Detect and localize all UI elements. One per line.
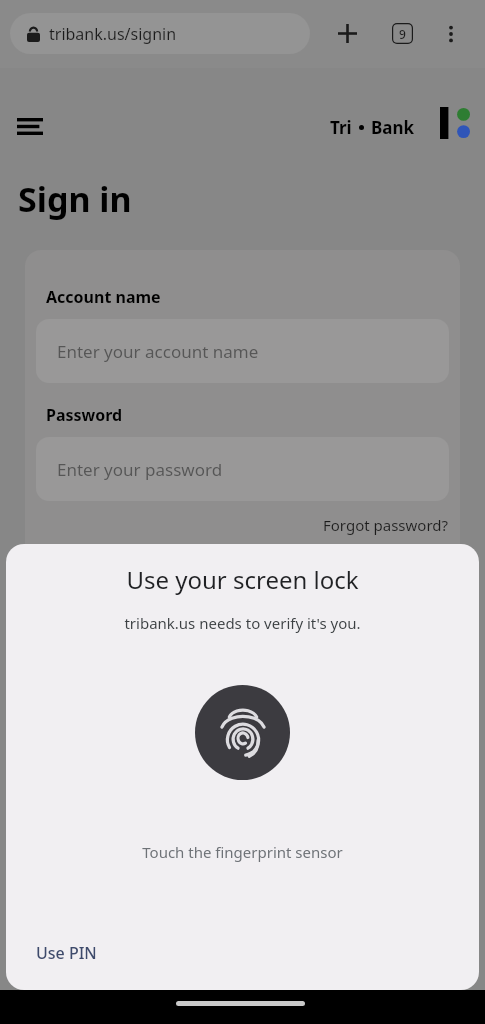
button[interactable]: More options (430, 13, 471, 54)
staticText: Use your screen lock (126, 563, 359, 596)
staticText: tribank.us/signin (49, 23, 177, 45)
button[interactable]: Enter your password (36, 437, 449, 501)
staticText: Enter your account name (57, 340, 259, 363)
button[interactable]: New tab (327, 13, 368, 54)
button[interactable]: Use PIN (22, 934, 111, 972)
button[interactable]: Forgot password? (323, 515, 449, 535)
button[interactable]: tribank.us/signin (10, 13, 310, 54)
button[interactable]: Menu (8, 104, 52, 148)
button[interactable]: Fingerprint sensor (195, 685, 290, 780)
staticText: Password (46, 404, 123, 426)
button[interactable]: Switch tabs, 9 open (382, 13, 423, 54)
staticText: Enter your password (57, 458, 223, 481)
button[interactable]: Enter your account name (36, 319, 449, 383)
staticText: tribank.us needs to verify it's you. (124, 613, 361, 633)
staticText: Account name (46, 286, 161, 308)
staticText: 9 (399, 26, 406, 42)
staticText: Touch the fingerprint sensor (142, 842, 343, 862)
staticText: Bank (371, 116, 415, 139)
staticText: Tri (330, 116, 352, 139)
staticText: Sign in (18, 176, 132, 222)
staticText: Use PIN (36, 942, 97, 964)
